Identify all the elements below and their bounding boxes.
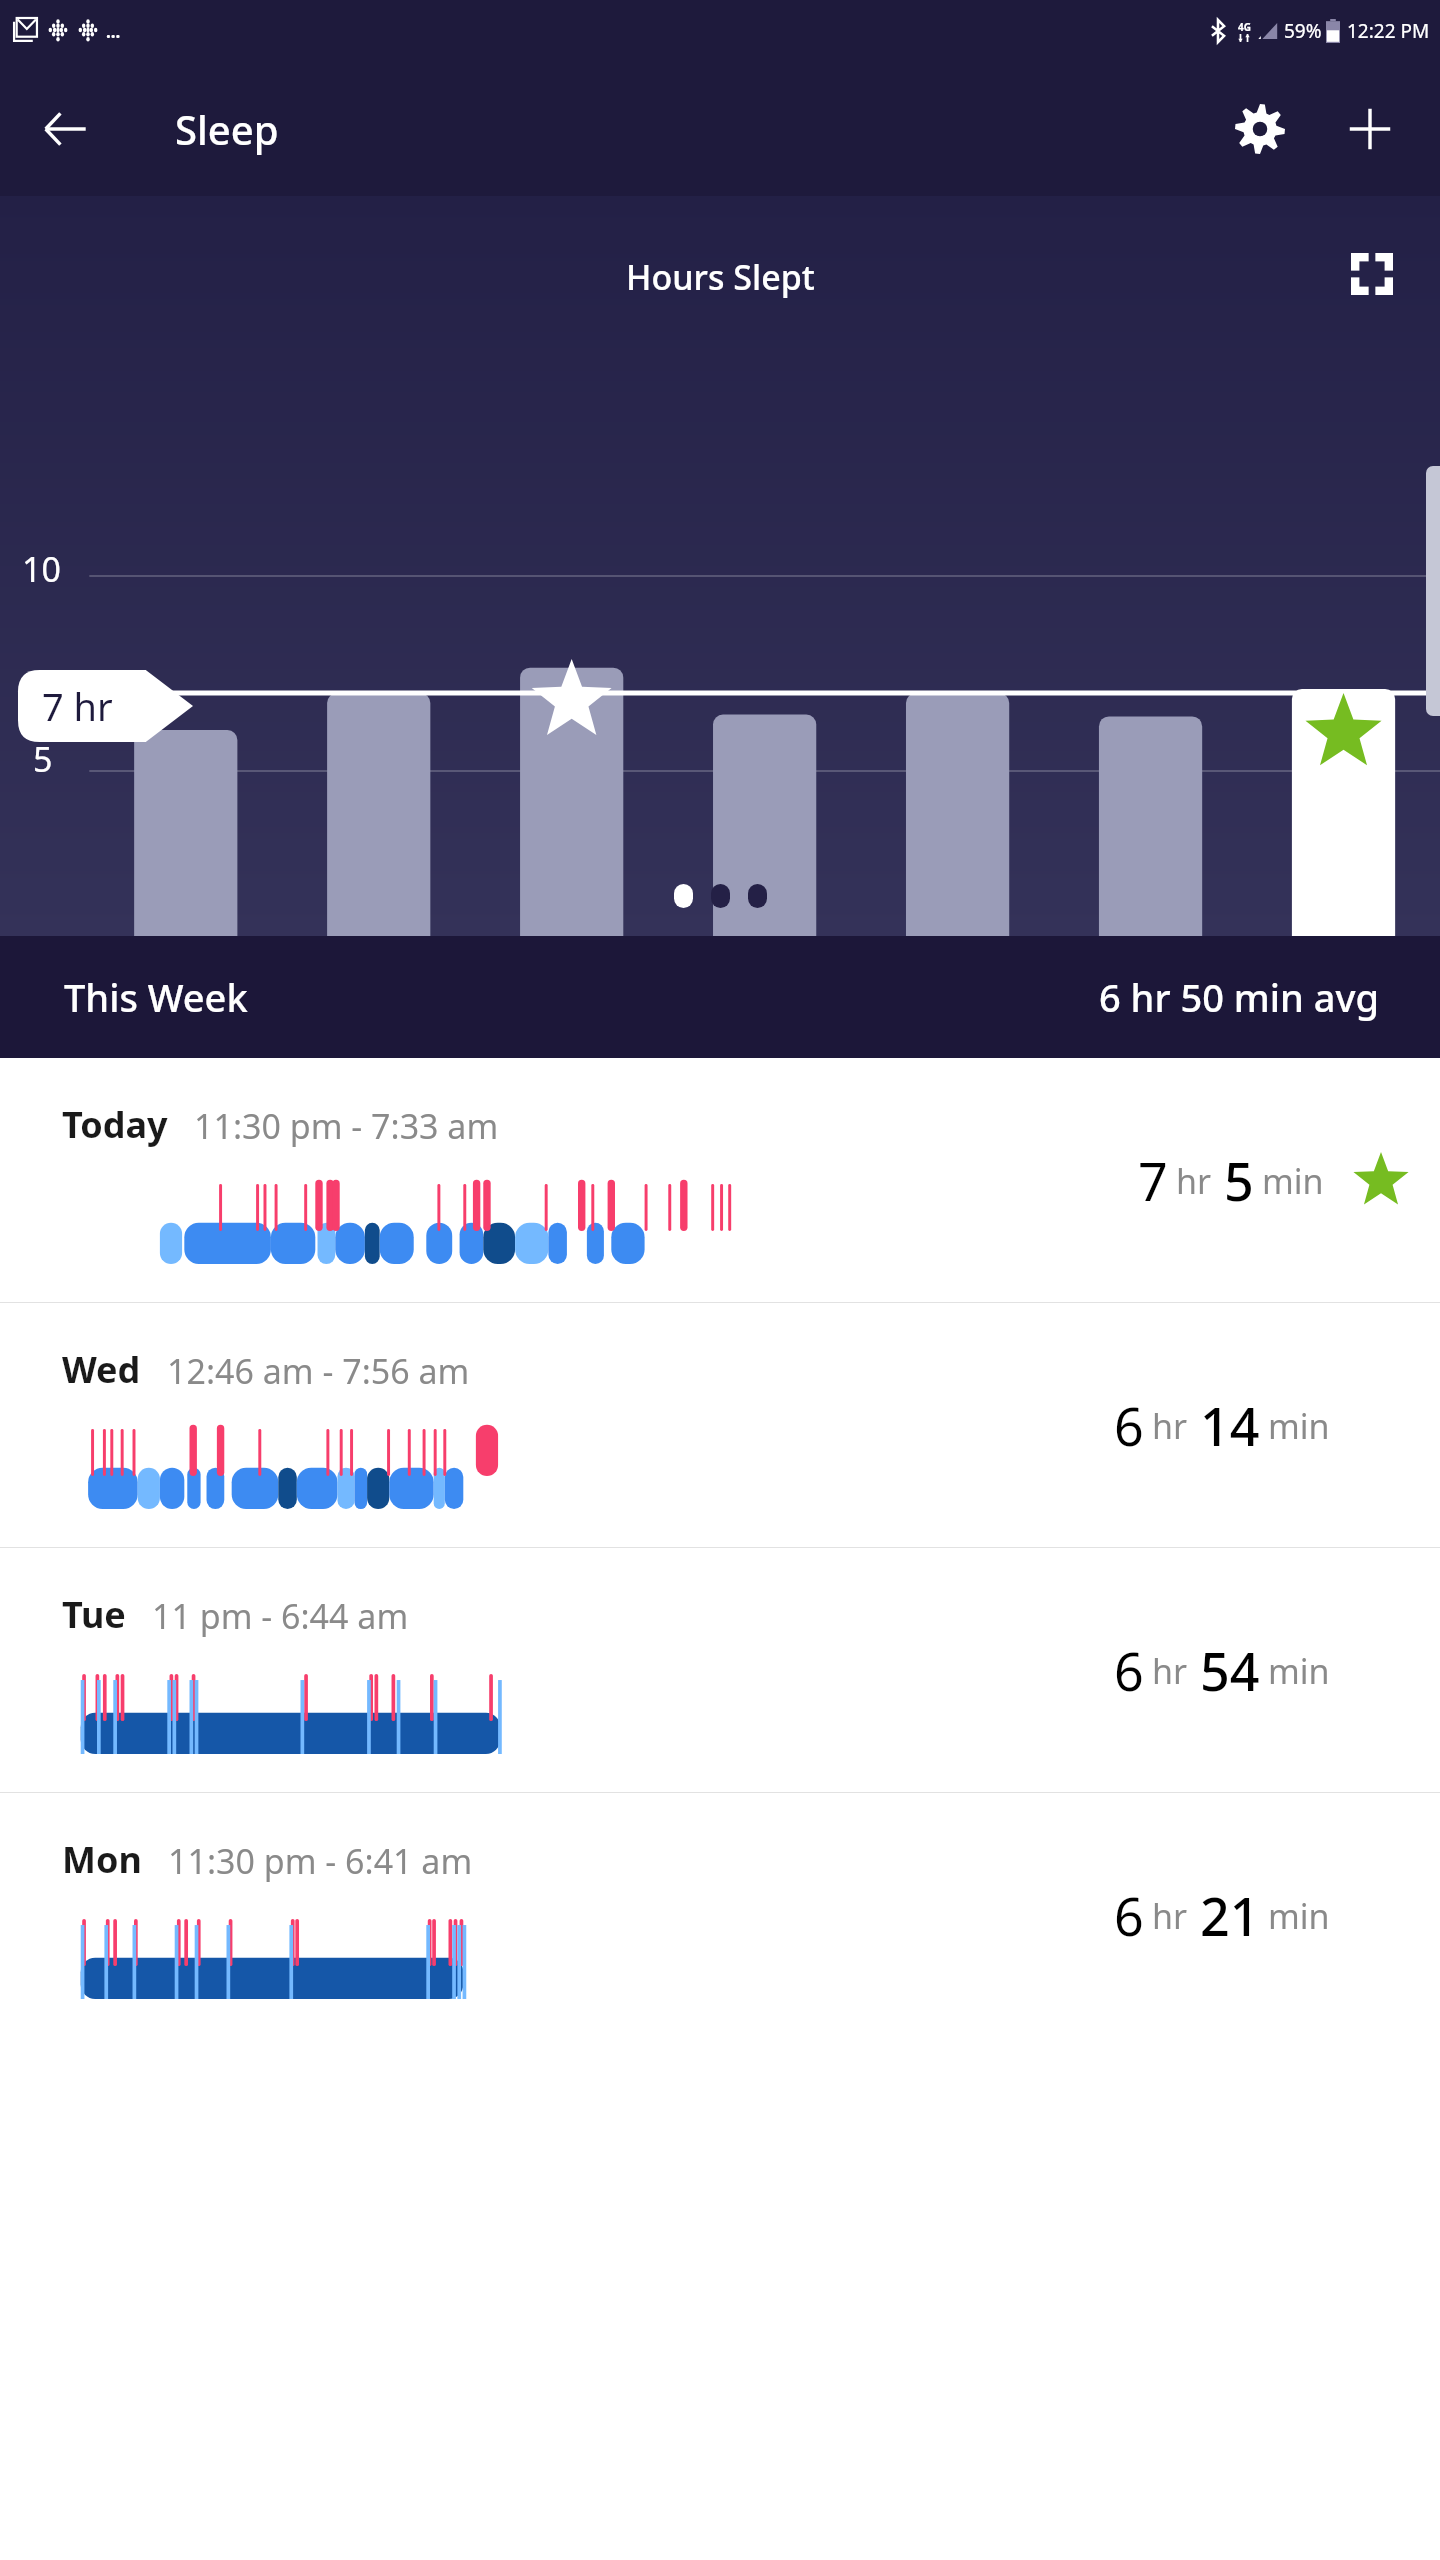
button[interactable]: Mon xyxy=(0,1793,1440,2037)
button[interactable]: Fullscreen xyxy=(1334,236,1410,312)
staticText: 6 xyxy=(1114,1390,1144,1461)
button[interactable]: Today xyxy=(0,1058,1440,1302)
staticText: 6 xyxy=(1114,1635,1144,1706)
button[interactable]: Back xyxy=(28,92,102,166)
button[interactable] xyxy=(748,884,767,908)
staticText: 7 xyxy=(1138,1145,1168,1216)
button[interactable]: Wed xyxy=(0,1303,1440,1547)
button[interactable]: Tue xyxy=(0,1548,1440,1792)
staticText: This Week xyxy=(64,971,248,1023)
staticText: 7 hr xyxy=(42,680,113,732)
staticText: ... xyxy=(106,20,121,43)
staticText: hr xyxy=(1152,1403,1188,1449)
staticText: 11 pm - 6:44 am xyxy=(152,1593,409,1639)
staticText: Tue xyxy=(62,1590,126,1639)
staticText: 10 xyxy=(22,546,61,592)
staticText: 5 xyxy=(33,736,53,782)
staticText: 11:30 pm - 7:33 am xyxy=(194,1103,499,1149)
staticText: hr xyxy=(1176,1158,1212,1204)
staticText: 12:22 PM xyxy=(1347,18,1430,44)
staticText: min xyxy=(1268,1403,1330,1449)
staticText: Wed xyxy=(62,1345,141,1394)
staticText: 54 xyxy=(1200,1635,1260,1706)
button[interactable] xyxy=(711,884,730,908)
staticText: min xyxy=(1268,1648,1330,1694)
staticText: Today xyxy=(62,1100,168,1149)
staticText: Hours Slept xyxy=(626,254,815,300)
staticText: Sleep xyxy=(175,102,279,156)
staticText: 21 xyxy=(1200,1880,1260,1951)
staticText: min xyxy=(1262,1158,1324,1204)
staticText: 6 xyxy=(1114,1880,1144,1951)
button[interactable] xyxy=(674,884,693,908)
button[interactable]: This Week xyxy=(0,936,1440,1058)
staticText: Mon xyxy=(62,1835,142,1884)
staticText: min xyxy=(1268,1893,1330,1939)
staticText: 11:30 pm - 6:41 am xyxy=(168,1838,473,1884)
staticText: 4G xyxy=(1238,20,1251,34)
staticText: 6 hr 50 min avg xyxy=(1099,971,1380,1023)
button[interactable]: Settings xyxy=(1218,87,1302,171)
staticText: hr xyxy=(1152,1648,1188,1694)
staticText: 14 xyxy=(1200,1390,1260,1461)
staticText: 59% xyxy=(1284,18,1322,44)
button[interactable]: Add xyxy=(1330,89,1410,169)
staticText: 5 xyxy=(1224,1145,1254,1216)
staticText: 12:46 am - 7:56 am xyxy=(167,1348,470,1394)
staticText: hr xyxy=(1152,1893,1188,1939)
